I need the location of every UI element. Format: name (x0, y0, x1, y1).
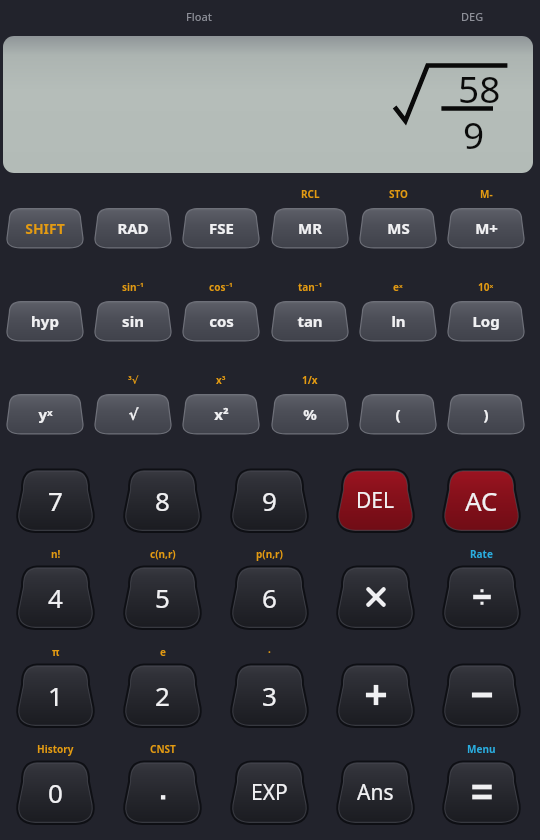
button[interactable]: AC (443, 468, 520, 532)
staticText: ln (391, 311, 406, 331)
button[interactable]: x² (181, 393, 261, 435)
staticText: x² (214, 404, 229, 424)
button[interactable]: 5 (124, 565, 201, 629)
button[interactable]: ) (446, 393, 526, 435)
staticText: AC (465, 483, 498, 518)
staticText: Ans (357, 778, 394, 807)
staticText: Log (472, 311, 500, 331)
staticText: M+ (475, 218, 498, 238)
staticText: cos (209, 311, 234, 331)
button[interactable]: % (270, 393, 350, 435)
staticText: sin⁻¹ (122, 280, 144, 294)
staticText: 9 (463, 109, 485, 159)
button[interactable]: Log (446, 300, 526, 342)
button[interactable]: Multiply (337, 565, 414, 629)
button[interactable]: MR (270, 207, 350, 249)
staticText: 7 (48, 483, 63, 518)
staticText: 9 (262, 483, 277, 518)
staticText: eˣ (393, 280, 403, 294)
staticText: √ (128, 406, 139, 423)
button[interactable]: 6 (231, 565, 308, 629)
staticText: 58 (458, 63, 501, 113)
staticText: SHIFT (25, 219, 65, 238)
button[interactable]: 58 (3, 36, 533, 173)
button[interactable]: EXP (231, 760, 308, 824)
staticText: Rate (470, 547, 493, 561)
button[interactable]: SHIFT (5, 207, 85, 249)
staticText: DEG (461, 9, 484, 24)
button[interactable]: 3 (231, 663, 308, 727)
staticText: % (303, 404, 317, 424)
button[interactable]: Equals (443, 760, 520, 824)
staticText: Menu (467, 742, 496, 756)
staticText: tan (297, 311, 323, 331)
staticText: 3 (262, 678, 277, 713)
button[interactable]: 0 (17, 760, 94, 824)
button[interactable]: M+ (446, 207, 526, 249)
staticText: e (160, 645, 166, 659)
button[interactable]: Divide (443, 565, 520, 629)
button[interactable]: RAD (93, 207, 173, 249)
button[interactable]: hyp (5, 300, 85, 342)
staticText: Float (186, 9, 213, 24)
staticText: MS (387, 218, 410, 238)
staticText: sin (122, 311, 144, 331)
button[interactable]: 4 (17, 565, 94, 629)
staticText: 0 (48, 775, 63, 810)
staticText: 8 (155, 483, 170, 518)
button[interactable]: Decimal point (124, 760, 201, 824)
button[interactable]: ln (358, 300, 438, 342)
staticText: hyp (31, 311, 59, 331)
staticText: yˣ (38, 404, 53, 424)
staticText: c(n,r) (150, 547, 176, 561)
staticText: 1/x (302, 373, 318, 387)
staticText: STO (389, 187, 408, 201)
staticText: 1 (48, 678, 63, 713)
staticText: History (37, 742, 74, 756)
staticText: 4 (48, 580, 63, 615)
staticText: 6 (262, 580, 277, 615)
button[interactable]: tan (270, 300, 350, 342)
button[interactable]: cos (181, 300, 261, 342)
staticText: π (52, 645, 60, 659)
staticText: 10ˣ (478, 280, 494, 294)
staticText: ³√ (128, 373, 139, 387)
staticText: RAD (117, 218, 149, 238)
button[interactable]: Subtract (443, 663, 520, 727)
button[interactable]: DEL (337, 468, 414, 532)
staticText: p(n,r) (256, 547, 283, 561)
staticText: cos⁻¹ (209, 280, 233, 294)
staticText: ) (483, 404, 489, 424)
button[interactable]: FSE (181, 207, 261, 249)
staticText: 5 (155, 580, 170, 615)
button[interactable]: sin (93, 300, 173, 342)
staticText: EXP (251, 778, 288, 807)
button[interactable]: 1 (17, 663, 94, 727)
staticText: n! (51, 547, 61, 561)
button[interactable]: 2 (124, 663, 201, 727)
button[interactable]: yˣ (5, 393, 85, 435)
button[interactable]: ( (358, 393, 438, 435)
staticText: MR (298, 218, 322, 238)
staticText: tan⁻¹ (298, 280, 323, 294)
button[interactable]: Add (337, 663, 414, 727)
staticText: DEL (356, 486, 395, 515)
staticText: M- (480, 187, 493, 201)
button[interactable]: √ (93, 393, 173, 435)
staticText: ( (395, 404, 401, 424)
button[interactable]: Ans (337, 760, 414, 824)
button[interactable]: 7 (17, 468, 94, 532)
staticText: RCL (301, 187, 320, 201)
staticText: · (268, 645, 271, 659)
staticText: x³ (216, 373, 226, 387)
staticText: FSE (209, 218, 234, 238)
staticText: CNST (150, 742, 176, 756)
staticText: 2 (155, 678, 170, 713)
button[interactable]: MS (358, 207, 438, 249)
button[interactable]: 8 (124, 468, 201, 532)
button[interactable]: 9 (231, 468, 308, 532)
